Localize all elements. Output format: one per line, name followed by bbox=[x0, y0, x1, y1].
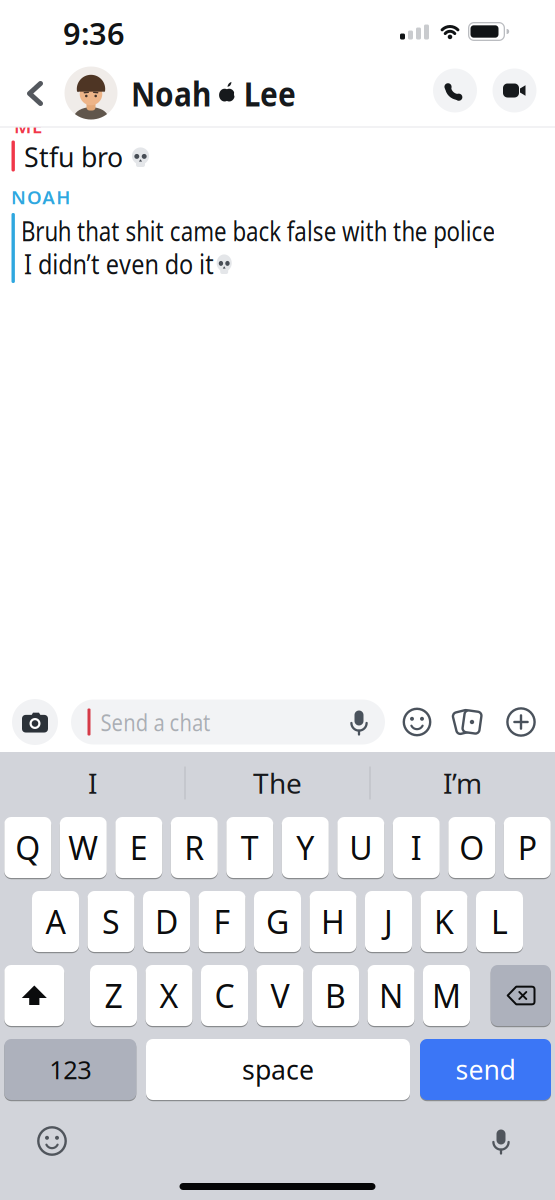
button[interactable] bbox=[4, 965, 64, 1026]
button[interactable]: A bbox=[32, 891, 79, 952]
button[interactable]: H bbox=[309, 891, 356, 952]
button[interactable]: space bbox=[146, 1039, 410, 1100]
staticText: C bbox=[214, 974, 234, 1017]
button[interactable]: G bbox=[254, 891, 301, 952]
staticText: Bruh that shit came back false with the … bbox=[21, 213, 555, 249]
staticText: M bbox=[432, 974, 461, 1017]
staticText: I bbox=[411, 826, 422, 869]
staticText: G bbox=[266, 900, 289, 943]
button[interactable] bbox=[37, 1126, 67, 1156]
staticText: L bbox=[491, 900, 508, 943]
button[interactable] bbox=[433, 68, 477, 112]
staticText: R bbox=[184, 826, 204, 869]
button[interactable]: D bbox=[143, 891, 190, 952]
button[interactable]: I’m bbox=[372, 758, 552, 808]
button[interactable]: C bbox=[201, 965, 248, 1026]
staticText: Y bbox=[296, 826, 314, 869]
staticText: O bbox=[459, 826, 484, 869]
staticText: 9:36 bbox=[63, 13, 125, 53]
staticText: J bbox=[384, 900, 393, 943]
button[interactable]: Send a chat bbox=[71, 699, 385, 744]
button[interactable]: F bbox=[198, 891, 245, 952]
staticText: F bbox=[213, 900, 230, 943]
button[interactable]: 123 bbox=[4, 1039, 136, 1100]
staticText: I bbox=[88, 764, 97, 802]
staticText: Q bbox=[15, 826, 40, 869]
button[interactable] bbox=[402, 707, 431, 736]
staticText: D bbox=[155, 900, 178, 943]
staticText: Noah bbox=[131, 70, 225, 116]
button[interactable] bbox=[12, 699, 58, 745]
button[interactable] bbox=[64, 66, 117, 119]
button[interactable]: U bbox=[337, 817, 384, 878]
button[interactable]: O bbox=[448, 817, 495, 878]
staticText: A bbox=[45, 900, 65, 943]
button[interactable]: P bbox=[504, 817, 551, 878]
staticText: Lee bbox=[262, 70, 323, 116]
button[interactable]: T bbox=[226, 817, 273, 878]
staticText: H bbox=[321, 900, 345, 943]
button[interactable]: I bbox=[2, 758, 182, 808]
button[interactable]: V bbox=[256, 965, 303, 1026]
staticText: Send a chat bbox=[100, 706, 231, 738]
staticText: V bbox=[270, 974, 289, 1017]
button[interactable]: S bbox=[87, 891, 134, 952]
staticText: U bbox=[349, 826, 372, 869]
staticText: ME bbox=[14, 114, 42, 138]
button[interactable]: N bbox=[367, 965, 414, 1026]
button[interactable]: Q bbox=[4, 817, 51, 878]
button[interactable]: X bbox=[145, 965, 192, 1026]
staticText: send bbox=[455, 1052, 515, 1087]
button[interactable]: send bbox=[420, 1039, 551, 1100]
button[interactable]: I bbox=[393, 817, 440, 878]
button[interactable]: L bbox=[476, 891, 523, 952]
staticText: I didn’t even do it bbox=[24, 246, 240, 282]
staticText: space bbox=[242, 1052, 314, 1087]
staticText: 123 bbox=[49, 1053, 91, 1086]
staticText: K bbox=[434, 900, 454, 943]
staticText: Z bbox=[104, 974, 122, 1017]
staticText: N bbox=[379, 974, 403, 1017]
button[interactable]: R bbox=[171, 817, 218, 878]
button[interactable] bbox=[17, 73, 53, 113]
button[interactable]: K bbox=[420, 891, 467, 952]
staticText: NOAH bbox=[11, 185, 70, 209]
staticText: The bbox=[253, 764, 302, 802]
staticText: W bbox=[68, 826, 98, 869]
staticText: Stfu bro bbox=[24, 139, 123, 175]
button[interactable]: The bbox=[187, 758, 367, 808]
button[interactable] bbox=[506, 707, 536, 737]
button[interactable]: M bbox=[423, 965, 470, 1026]
button[interactable]: W bbox=[60, 817, 107, 878]
button[interactable]: B bbox=[312, 965, 359, 1026]
button[interactable] bbox=[491, 1128, 510, 1153]
staticText: X bbox=[159, 974, 178, 1017]
staticText: E bbox=[130, 826, 148, 869]
button[interactable]: Y bbox=[282, 817, 329, 878]
button[interactable]: Z bbox=[90, 965, 137, 1026]
button[interactable]: E bbox=[115, 817, 162, 878]
button[interactable] bbox=[492, 68, 536, 112]
staticText: B bbox=[325, 974, 346, 1017]
button[interactable] bbox=[491, 965, 551, 1026]
button[interactable]: J bbox=[365, 891, 412, 952]
button[interactable] bbox=[452, 707, 484, 737]
staticText: P bbox=[518, 826, 537, 869]
staticText: T bbox=[241, 826, 259, 869]
staticText: S bbox=[102, 900, 120, 943]
staticText: I’m bbox=[443, 764, 482, 802]
